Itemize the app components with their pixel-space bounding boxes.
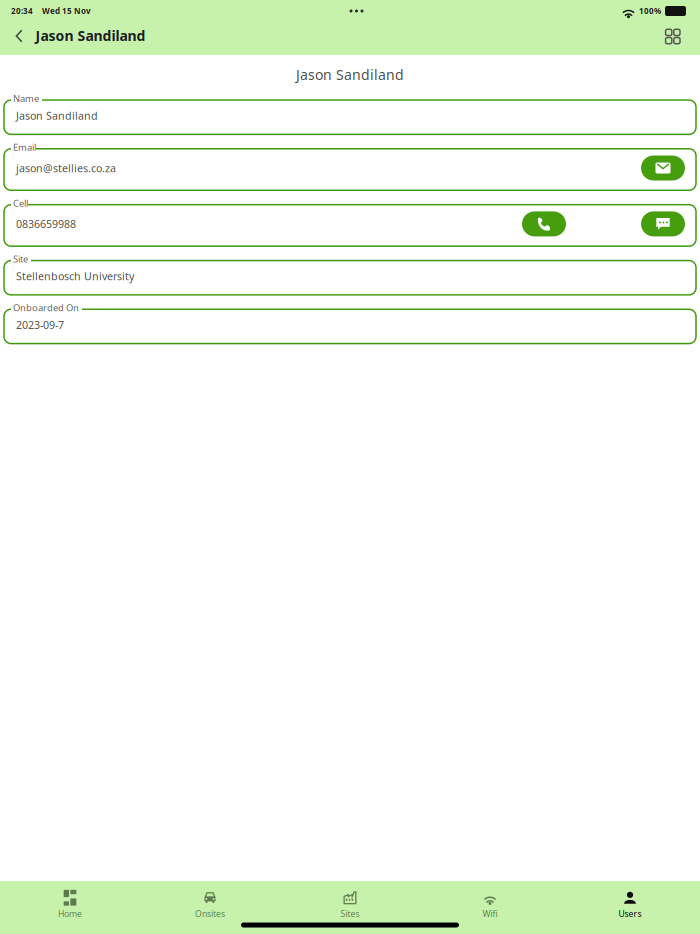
button[interactable]: Wifi [420, 881, 560, 923]
staticText: Sites [340, 908, 359, 919]
button[interactable]: Send message [641, 211, 685, 236]
button[interactable]: Sites [280, 881, 420, 923]
button[interactable]: Call [522, 211, 566, 236]
staticText: Jason Sandiland [16, 108, 98, 123]
staticText: Email [13, 141, 36, 153]
staticText: 100% [639, 6, 661, 16]
staticText: Wed 15 Nov [42, 6, 91, 16]
button[interactable]: Jason Sandiland [0, 24, 155, 53]
staticText: Name [13, 92, 39, 105]
staticText: Onsites [195, 908, 225, 919]
staticText: Onboarded On [13, 301, 79, 314]
staticText: Stellenbosch University [16, 269, 134, 283]
button[interactable]: Home [0, 881, 140, 923]
staticText: Jason Sandiland [35, 26, 145, 45]
button[interactable]: Grid view [652, 23, 700, 54]
staticText: jason@stellies.co.za [16, 161, 116, 175]
button[interactable]: Users [560, 881, 700, 923]
staticText: Home [58, 908, 82, 919]
staticText: 0836659988 [16, 217, 76, 231]
staticText: 2023-09-7 [16, 318, 64, 332]
button[interactable]: Send email [641, 155, 685, 180]
staticText: Jason Sandiland [296, 65, 404, 84]
staticText: Wifi [482, 908, 497, 919]
staticText: Cell [13, 197, 28, 209]
button[interactable]: Onsites [140, 881, 280, 923]
staticText: Site [13, 253, 28, 265]
staticText: Users [618, 908, 641, 919]
staticText: 20:34 [11, 6, 33, 16]
